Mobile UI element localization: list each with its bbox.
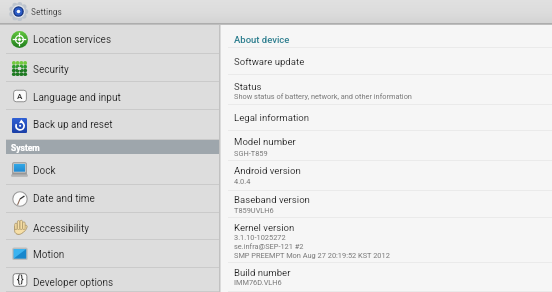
button[interactable]: Date and time <box>0 185 219 213</box>
staticText: Kernel version <box>234 222 295 233</box>
button[interactable]: Dock <box>0 154 219 185</box>
staticText: IMM76D.VLH6 <box>234 278 282 287</box>
button[interactable]: Baseband version <box>221 191 552 218</box>
button[interactable]: Location services <box>0 25 219 54</box>
staticText: Language and input <box>33 92 121 104</box>
button[interactable]: Accessibility <box>0 213 219 240</box>
staticText: Build number <box>234 267 291 278</box>
staticText: Motion <box>33 249 65 261</box>
button[interactable]: Software update <box>221 48 552 75</box>
staticText: Location services <box>33 34 112 46</box>
staticText: System <box>11 143 40 153</box>
staticText: 3.1.10-1025272 <box>234 233 286 242</box>
button[interactable]: Model number <box>221 131 552 161</box>
button[interactable]: Kernel version <box>221 218 552 263</box>
button[interactable]: Back up and reset <box>0 110 219 140</box>
staticText: 4.0.4 <box>234 177 251 186</box>
staticText: Security <box>33 64 69 76</box>
staticText: Show status of battery, network, and oth… <box>234 92 412 101</box>
button[interactable]: Build number <box>221 263 552 292</box>
staticText: Legal information <box>234 112 310 123</box>
staticText: SMP PREEMPT Mon Aug 27 20:19:52 KST 2012 <box>234 251 390 260</box>
staticText: Dock <box>33 165 56 177</box>
button[interactable]: Android version <box>221 161 552 191</box>
button[interactable]: {} <box>0 268 219 292</box>
staticText: se.infra@SEP-121 #2 <box>234 242 304 251</box>
staticText: {} <box>17 274 24 286</box>
button[interactable]: Security <box>0 54 219 82</box>
staticText: Status <box>234 81 262 92</box>
staticText: About device <box>234 34 290 45</box>
button[interactable]: About device <box>221 25 552 48</box>
staticText: Model number <box>234 136 296 147</box>
staticText: Settings <box>31 6 62 17</box>
staticText: Android version <box>234 165 301 176</box>
button[interactable]: Motion <box>0 240 219 268</box>
staticText: SGH-T859 <box>234 149 268 158</box>
staticText: Accessibility <box>33 223 89 235</box>
staticText: Baseband version <box>234 194 310 205</box>
button[interactable]: Status <box>221 75 552 105</box>
staticText: Software update <box>234 56 305 67</box>
button[interactable]: Legal information <box>221 105 552 131</box>
staticText: Date and time <box>33 193 95 205</box>
staticText: T859UVLH6 <box>234 206 274 215</box>
staticText: Developer options <box>33 277 114 289</box>
staticText: Back up and reset <box>33 119 113 131</box>
staticText: A <box>17 92 23 101</box>
button[interactable]: A <box>0 82 219 110</box>
